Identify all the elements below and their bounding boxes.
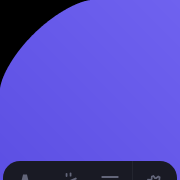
button[interactable]: Activity <box>48 161 88 180</box>
button[interactable]: Home <box>5 161 45 180</box>
button[interactable]: Settings <box>135 161 175 180</box>
button[interactable]: Wallet <box>90 161 130 180</box>
